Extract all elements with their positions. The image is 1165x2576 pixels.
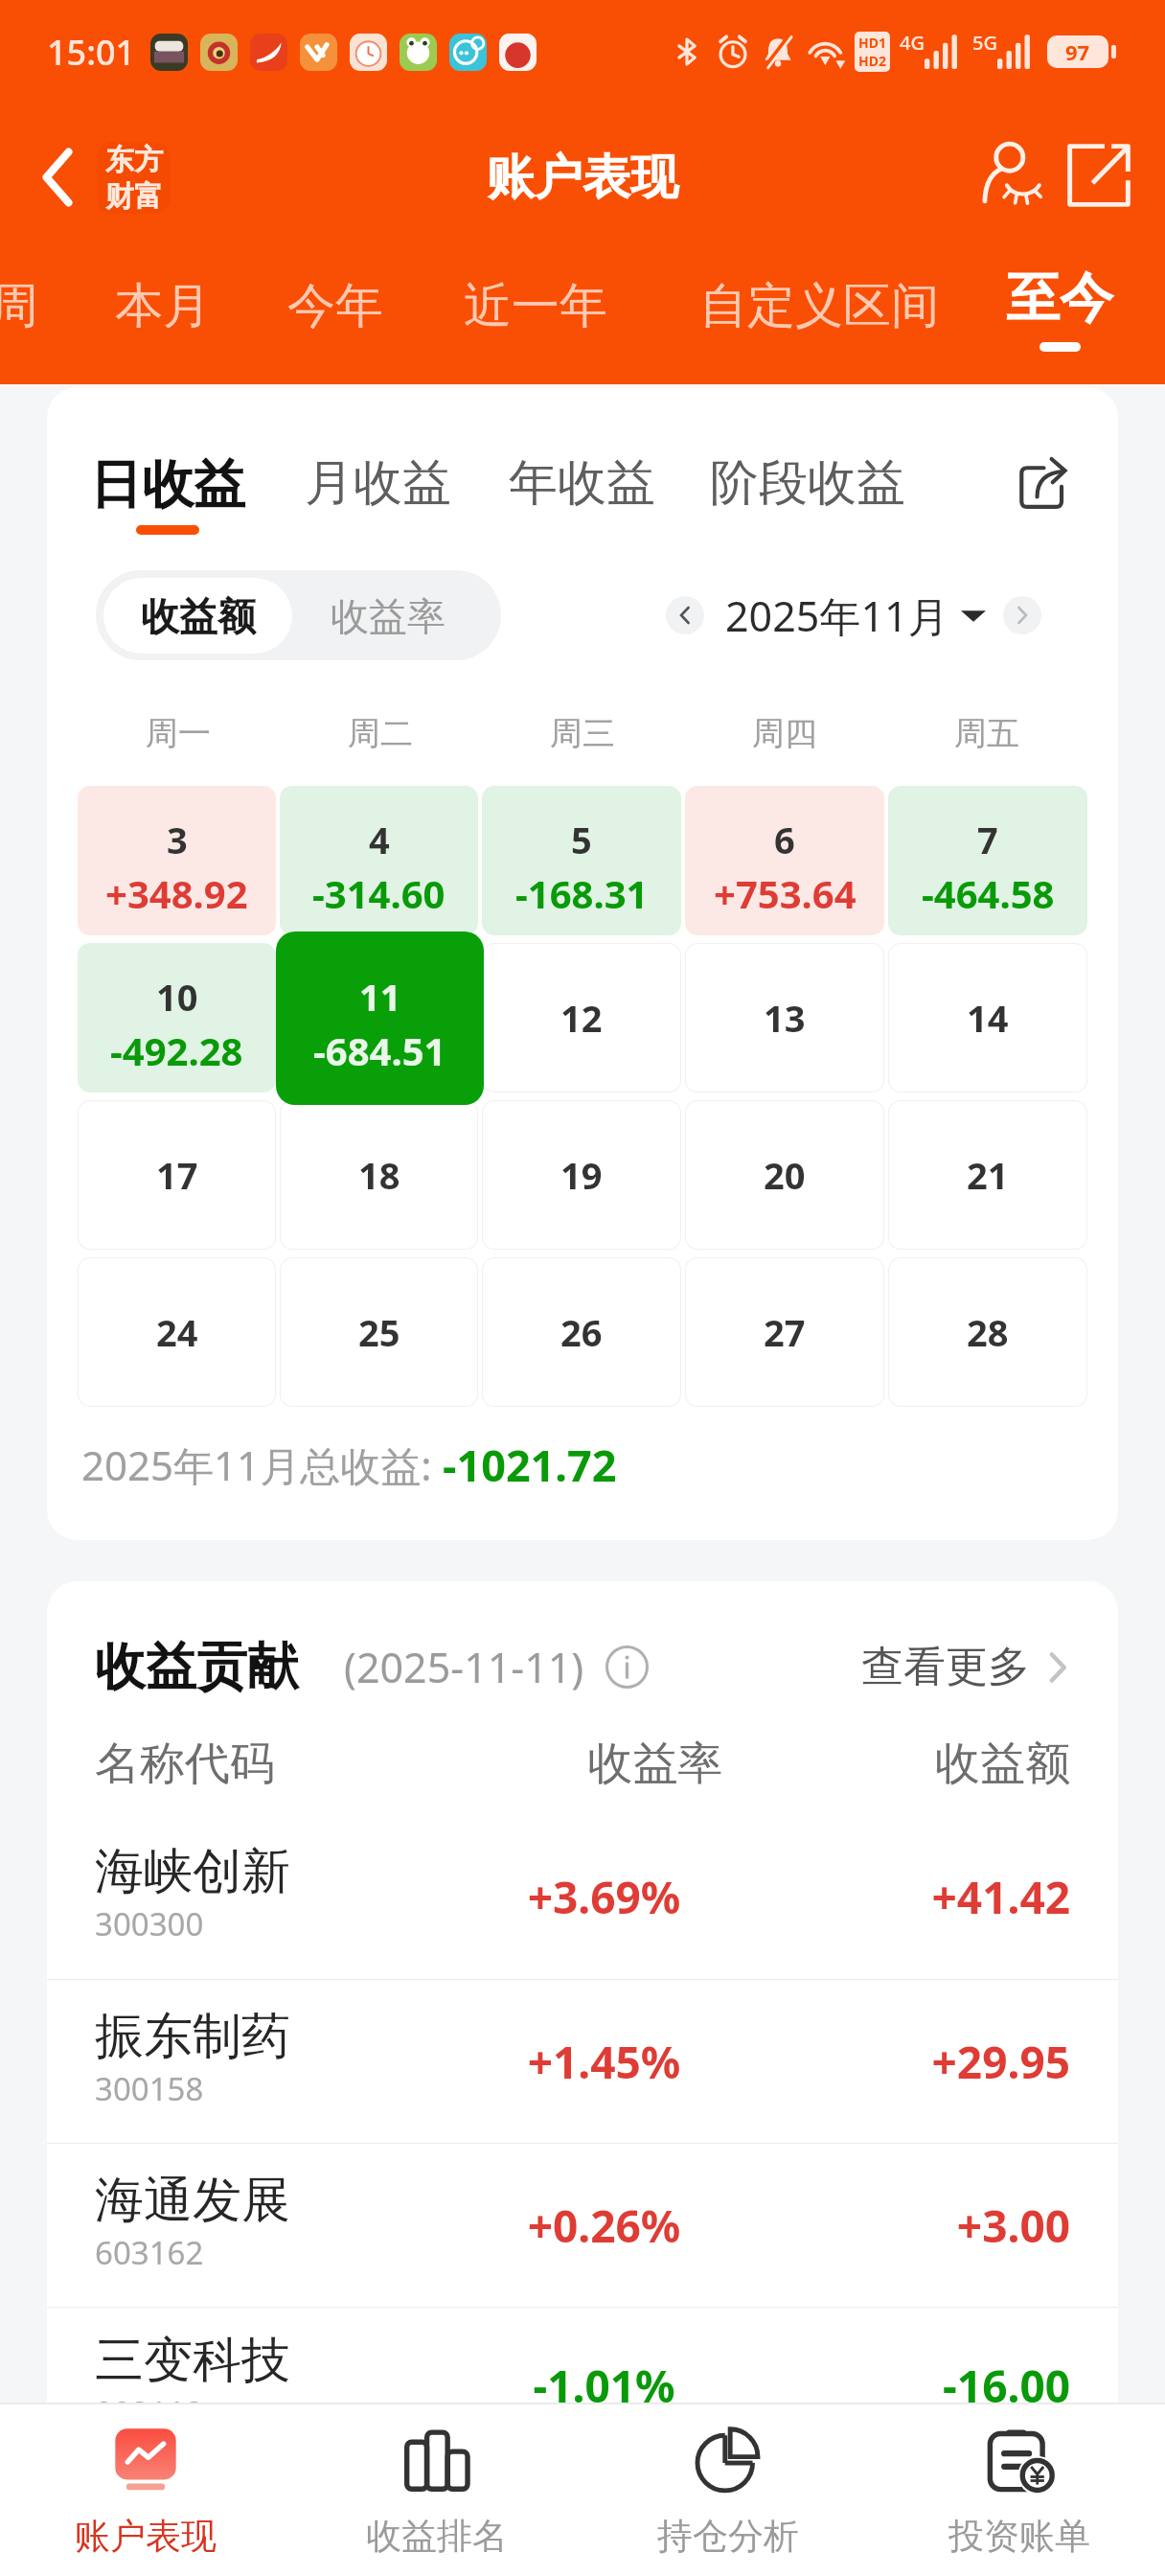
button[interactable]: 账户表现 [0,2409,291,2576]
staticText: 7 [977,815,998,864]
button[interactable]: 本月 [115,249,211,336]
staticText: -464.58 [922,867,1055,919]
staticText: -1.01% [440,2356,768,2416]
button[interactable]: 周 [0,249,38,336]
button[interactable]: 收益额 [103,578,292,654]
button[interactable]: 18 [280,1100,478,1250]
staticText: -168.31 [515,867,649,919]
staticText: 振东制药 [95,2006,290,2067]
button[interactable]: 查看更多 [861,1641,1074,1693]
button[interactable]: 17 [78,1100,276,1250]
staticText: +1.45% [440,2032,768,2092]
staticText: 12 [560,993,603,1043]
button[interactable]: 振东制药 [47,1980,1118,2143]
staticText: 账户表现 [75,2514,217,2559]
staticText: 002112 [95,2391,204,2434]
staticText: 14 [967,993,1009,1043]
button[interactable]: 收益率 [292,578,484,654]
button[interactable]: 3 [78,786,276,935]
staticText: 本月 [115,276,211,336]
button[interactable]: Back [27,147,88,208]
button[interactable]: 19 [482,1100,681,1250]
button[interactable]: 25 [280,1257,478,1407]
staticText: 收益额 [141,592,256,640]
button[interactable]: 11 [276,931,484,1105]
button[interactable]: 近一年 [464,249,607,336]
staticText: -492.28 [110,1024,243,1076]
staticText: 查看更多 [861,1641,1030,1693]
staticText: 账户表现 [487,148,678,208]
button[interactable]: 6 [685,786,884,935]
staticText: +3.69% [440,1867,768,1927]
staticText: 18 [358,1150,400,1200]
staticText: 25 [358,1307,400,1357]
staticText: 28 [967,1307,1009,1357]
button[interactable]: Account [976,136,1057,217]
button[interactable]: 10 [78,943,276,1092]
staticText: 5G [972,30,997,56]
button[interactable]: 持仓分析 [582,2409,874,2576]
staticText: 收益额 [812,1736,1070,1792]
button[interactable]: 阶段收益 [710,452,905,514]
button[interactable]: 投资账单 [874,2409,1165,2576]
staticText: 财富 [105,178,163,214]
staticText: 24 [156,1307,198,1357]
button[interactable]: 13 [685,943,884,1092]
button[interactable]: Next month [1003,596,1041,634]
button[interactable]: 7 [888,786,1087,935]
button[interactable]: 4 [280,786,478,935]
button[interactable]: 三变科技 [47,2308,1118,2463]
staticText: -1021.72 [443,1436,617,1494]
button[interactable]: Previous month [666,596,704,634]
staticText: 三变科技 [95,2330,290,2391]
staticText: 持仓分析 [657,2514,799,2559]
button[interactable]: 12 [482,943,681,1092]
button[interactable]: 自定义区间 [699,249,939,336]
button[interactable]: Share [1059,135,1139,216]
button[interactable]: 24 [78,1257,276,1407]
staticText: 26 [560,1307,603,1357]
staticText: 周一 [146,713,211,754]
staticText: 至今 [1006,264,1113,333]
staticText: +753.64 [714,867,857,919]
staticText: 5 [571,815,592,864]
button[interactable]: 20 [685,1100,884,1250]
staticText: 月收益 [305,452,451,514]
button[interactable]: 27 [685,1257,884,1407]
staticText: HD2 [858,52,886,70]
button[interactable]: 21 [888,1100,1087,1250]
button[interactable]: 5 [482,786,681,935]
button[interactable]: 26 [482,1257,681,1407]
staticText: 17 [156,1150,198,1200]
button[interactable]: 今年 [287,249,383,336]
staticText: +41.42 [768,1867,1070,1927]
button[interactable]: 海峡创新 [47,1815,1118,1979]
staticText: 阶段收益 [710,452,905,514]
button[interactable]: 东方 [97,142,171,214]
staticText: 自定义区间 [699,276,939,336]
staticText: 日收益 [90,452,245,517]
button[interactable]: 年收益 [509,452,655,514]
button[interactable]: 月收益 [305,452,451,514]
staticText: 收益排名 [366,2514,508,2559]
staticText: 东方 [105,142,163,178]
button[interactable]: 海通发展 [47,2144,1118,2307]
button[interactable]: 28 [888,1257,1087,1407]
staticText: 周 [0,276,38,336]
staticText: 收益率 [498,1736,812,1792]
button[interactable]: 至今 [1006,249,1113,352]
staticText: 15:01 [47,29,136,76]
staticText: +0.26% [440,2196,768,2256]
staticText: 名称代码 [95,1736,498,1792]
button[interactable]: 日收益 [90,452,245,535]
staticText: -314.60 [312,867,445,919]
staticText: 300300 [95,1902,204,1945]
staticText: 投资账单 [948,2514,1090,2559]
staticText: +348.92 [105,867,248,919]
button[interactable]: Share [1007,447,1074,514]
button[interactable]: 14 [888,943,1087,1092]
button[interactable]: 收益排名 [291,2409,582,2576]
staticText: 4G [900,30,925,56]
staticText: 海通发展 [95,2170,290,2231]
staticText: +29.95 [768,2032,1070,2092]
